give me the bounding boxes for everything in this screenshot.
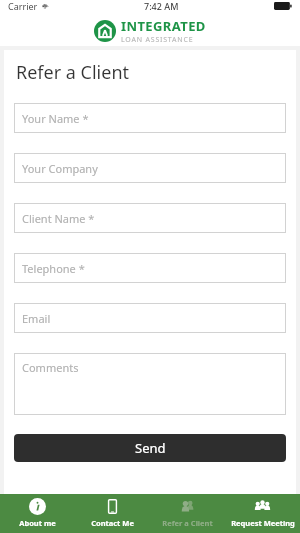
staticText: 7:42 AM [144, 0, 179, 12]
button[interactable]: Send [14, 434, 286, 462]
button[interactable]: Comments [14, 353, 286, 415]
staticText: LOAN ASSISTANCE [121, 35, 194, 45]
button[interactable]: About me [0, 494, 75, 531]
button[interactable]: Your Company [14, 153, 286, 183]
staticText: Refer a Client [162, 518, 213, 528]
button[interactable]: Your Name * [14, 103, 286, 133]
button[interactable]: Client Name * [14, 203, 286, 233]
button[interactable]: Email [14, 303, 286, 333]
button[interactable]: Refer a Client [150, 494, 225, 531]
staticText: Contact Me [91, 518, 134, 528]
staticText: Send [135, 439, 166, 457]
staticText: Comments [22, 360, 79, 375]
staticText: Your Company [22, 161, 98, 176]
staticText: About me [19, 518, 56, 528]
staticText: Refer a Client [16, 60, 130, 85]
button[interactable]: Request Meeting [225, 494, 300, 531]
staticText: Email [22, 311, 51, 326]
button[interactable]: Telephone * [14, 253, 286, 283]
staticText: Your Name * [22, 111, 89, 126]
staticText: Client Name * [22, 211, 95, 226]
button[interactable]: Contact Me [75, 494, 150, 531]
staticText: Request Meeting [231, 518, 295, 528]
staticText: Telephone * [22, 261, 85, 276]
staticText: Carrier [8, 0, 38, 12]
staticText: INTEGRATED [121, 17, 206, 35]
